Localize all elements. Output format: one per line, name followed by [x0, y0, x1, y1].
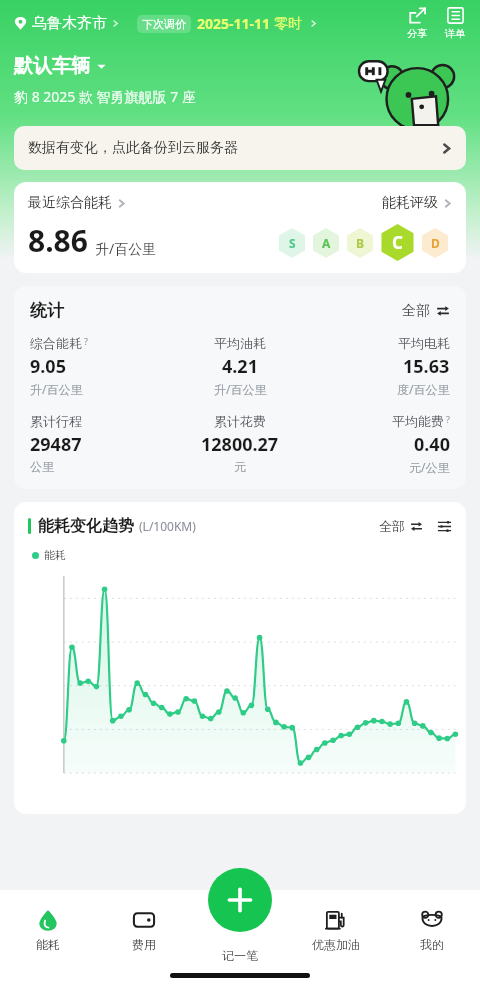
button[interactable]: 分享	[402, 6, 432, 40]
staticText: 零时	[274, 15, 302, 33]
button[interactable]: 全部	[379, 518, 423, 534]
staticText: 记一笔	[222, 948, 258, 963]
staticText: 9.05	[30, 354, 66, 379]
staticText: 2025-11-11	[197, 14, 271, 33]
staticText: 优惠加油	[312, 937, 360, 952]
staticText: 豹 8 2025 款 智勇旗舰版 7 座	[14, 87, 196, 106]
staticText: 全部	[379, 518, 405, 534]
staticText: 下次调价	[142, 17, 186, 31]
staticText: B	[356, 235, 364, 251]
staticText: 详单	[445, 27, 465, 40]
staticText: 全部	[402, 302, 430, 320]
button[interactable]: 记一笔	[208, 868, 272, 932]
button[interactable]: 我的	[384, 906, 480, 954]
staticText: 累计行程	[30, 413, 82, 429]
staticText: 升/百公里	[95, 239, 157, 258]
staticText: 我的	[420, 937, 444, 952]
staticText: 平均电耗	[398, 335, 450, 351]
button[interactable]: 费用	[96, 906, 192, 954]
button[interactable]: 数据有变化，点此备份到云服务器	[14, 126, 466, 170]
staticText: A	[322, 235, 331, 251]
button[interactable]: 全部	[402, 302, 450, 320]
staticText: 8.86	[28, 220, 88, 261]
staticText: 最近综合能耗	[28, 194, 112, 212]
staticText: 能耗评级	[382, 194, 438, 212]
staticText: 能耗	[36, 937, 60, 952]
staticText: 15.63	[403, 354, 450, 379]
staticText: ?	[446, 413, 450, 425]
staticText: 统计	[30, 300, 64, 321]
staticText: 能耗	[44, 548, 66, 562]
staticText: 元	[234, 459, 246, 474]
staticText: (L/100KM)	[139, 518, 196, 534]
staticText: 默认车辆	[14, 54, 90, 78]
staticText: S	[289, 235, 296, 251]
staticText: ?	[84, 335, 88, 347]
staticText: 乌鲁木齐市	[32, 14, 107, 33]
staticText: 12800.27	[201, 432, 279, 457]
button[interactable]: 能耗	[0, 906, 96, 954]
staticText: 费用	[132, 937, 156, 952]
button[interactable]: 默认车辆	[14, 54, 107, 78]
staticText: 数据有变化，点此备份到云服务器	[28, 139, 238, 157]
button[interactable]: 筛选	[437, 519, 452, 534]
staticText: 0.40	[414, 432, 450, 457]
staticText: 度/百公里	[397, 381, 450, 397]
button[interactable]: 详单	[440, 6, 470, 40]
button[interactable]: 最近综合能耗	[28, 194, 126, 212]
button[interactable]: 下次调价	[137, 10, 317, 37]
staticText: 平均油耗	[214, 335, 266, 351]
staticText: 综合能耗	[30, 335, 82, 351]
staticText: D	[431, 235, 440, 251]
staticText: 升/百公里	[214, 381, 267, 397]
staticText: 能耗变化趋势	[38, 516, 134, 536]
staticText: 累计花费	[214, 413, 266, 429]
staticText: C	[392, 231, 403, 254]
button[interactable]: 优惠加油	[288, 906, 384, 954]
staticText: 4.21	[222, 354, 258, 379]
staticText: 分享	[407, 27, 427, 40]
staticText: 公里	[30, 459, 54, 474]
button[interactable]: 乌鲁木齐市	[12, 10, 121, 37]
staticText: 29487	[30, 432, 82, 457]
staticText: 平均能费	[392, 413, 444, 429]
staticText: 元/公里	[409, 459, 450, 475]
staticText: 升/百公里	[30, 381, 83, 397]
button[interactable]: 能耗评级	[382, 194, 452, 212]
